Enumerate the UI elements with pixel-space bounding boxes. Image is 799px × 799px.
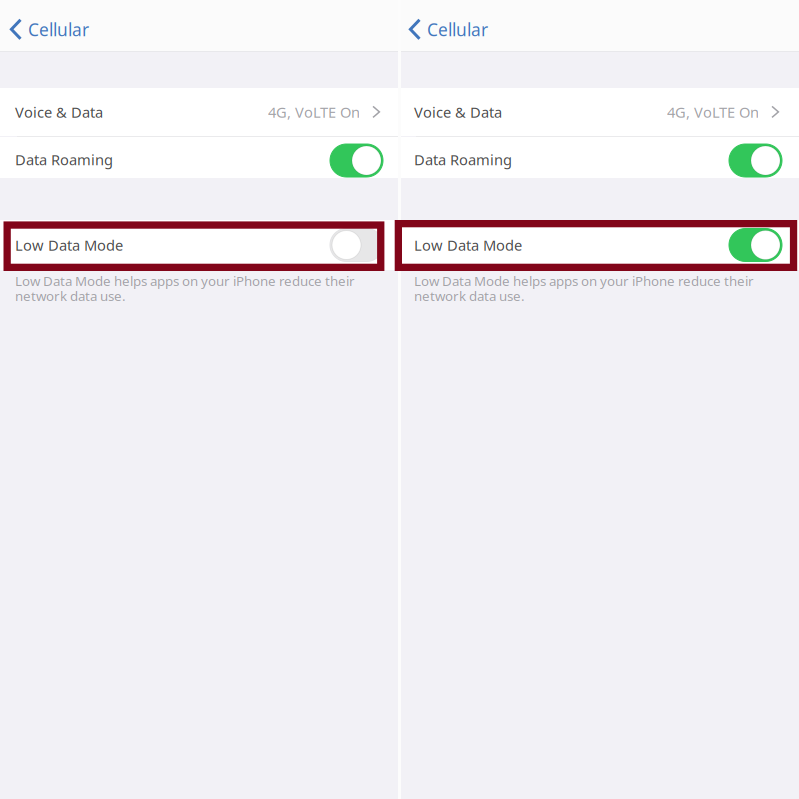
staticText: Data Roaming [414, 150, 512, 169]
staticText: Voice & Data [15, 102, 103, 122]
button[interactable]: Low Data Mode [399, 220, 799, 270]
staticText: Data Roaming [15, 150, 113, 169]
button[interactable]: Data Roaming [399, 137, 799, 178]
staticText: 4G, VoLTE On [268, 102, 360, 122]
button[interactable]: Cellular [399, 0, 500, 52]
staticText: Low Data Mode [15, 235, 123, 255]
staticText: network data use. [414, 287, 525, 305]
button[interactable]: Voice & Data [399, 88, 799, 136]
staticText: Voice & Data [414, 102, 502, 122]
staticText: Cellular [28, 18, 89, 41]
staticText: Low Data Mode helps apps on your iPhone … [414, 272, 754, 290]
button[interactable]: Voice & Data [0, 88, 399, 136]
button[interactable]: Low Data Mode [0, 220, 399, 270]
staticText: Low Data Mode [414, 235, 522, 255]
staticText: Cellular [427, 18, 488, 41]
staticText: 4G, VoLTE On [667, 102, 759, 122]
staticText: network data use. [15, 287, 126, 305]
button[interactable]: Data Roaming [0, 137, 399, 178]
button[interactable]: Cellular [0, 0, 101, 52]
staticText: Low Data Mode helps apps on your iPhone … [15, 272, 355, 290]
